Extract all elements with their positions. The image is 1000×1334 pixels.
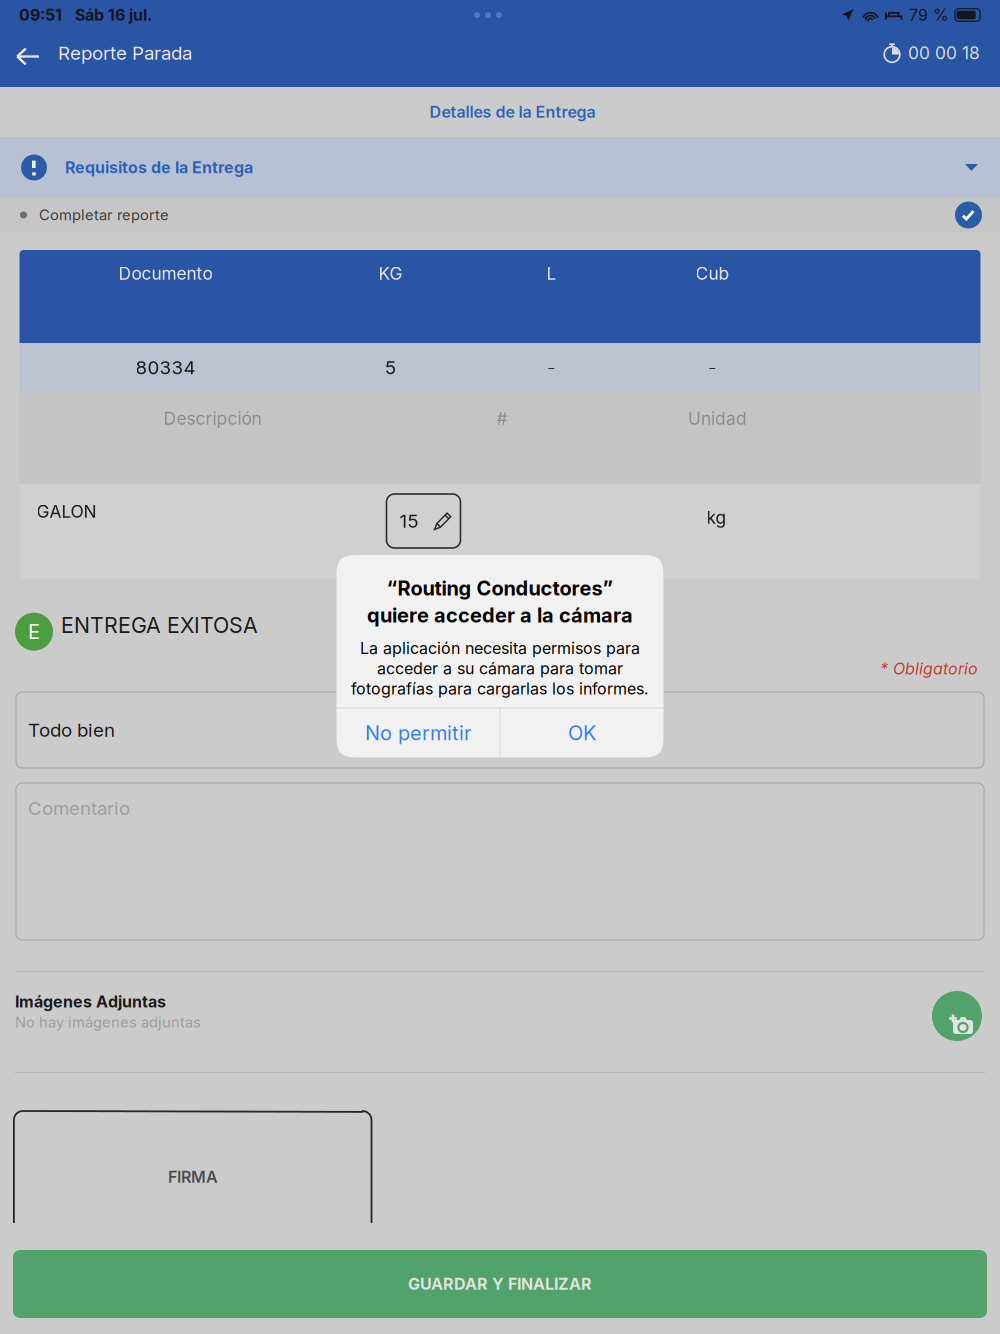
staticText: OK	[568, 721, 596, 745]
staticText: 79 %	[909, 5, 949, 25]
staticText: Sáb 16 jul.	[75, 5, 152, 25]
staticText: acceder a su cámara para tomar	[377, 659, 623, 678]
staticText: Unidad	[688, 408, 747, 429]
button[interactable]: GUARDAR Y FINALIZAR	[13, 1250, 987, 1318]
button[interactable]: Editar cantidad	[386, 494, 460, 548]
staticText: 09:51	[19, 5, 62, 25]
staticText: Reporte Parada	[58, 42, 192, 64]
staticText: kg	[706, 507, 726, 528]
staticText: 80334	[135, 356, 195, 379]
staticText: Descripción	[163, 408, 261, 429]
staticText: Documento	[118, 263, 212, 284]
button[interactable]: Cronómetro	[883, 30, 1000, 76]
staticText: quiere acceder a la cámara	[367, 603, 633, 627]
staticText: fotografías para cargarlas los informes.	[351, 679, 649, 698]
staticText: No hay imágenes adjuntas	[15, 1013, 201, 1031]
staticText: ENTREGA EXITOSA	[61, 612, 258, 638]
staticText: GUARDAR Y FINALIZAR	[408, 1274, 592, 1294]
staticText: -	[708, 356, 717, 379]
staticText: * Obligatorio	[880, 659, 978, 678]
button[interactable]: Agregar imagen	[932, 991, 982, 1041]
staticText: No permitir	[365, 721, 471, 745]
button[interactable]: Detalles de la Entrega	[0, 87, 1000, 137]
staticText: #	[496, 408, 507, 429]
staticText: 15	[399, 510, 418, 532]
staticText: La aplicación necesita permisos para	[360, 638, 640, 658]
staticText: “Routing Conductores”	[386, 576, 613, 600]
staticText: Completar reporte	[39, 206, 169, 224]
staticText: GALON	[36, 501, 96, 522]
staticText: FIRMA	[168, 1167, 218, 1187]
staticText: Cub	[695, 263, 729, 284]
staticText: L	[546, 263, 556, 284]
staticText: KG	[378, 263, 402, 284]
staticText: Comentario	[28, 797, 130, 820]
button[interactable]: No permitir	[336, 708, 499, 757]
staticText: Requisitos de la Entrega	[65, 158, 253, 177]
staticText: Imágenes Adjuntas	[15, 992, 166, 1011]
button[interactable]: OK	[500, 708, 663, 757]
staticText: 5	[385, 356, 396, 379]
staticText: -	[547, 356, 556, 379]
staticText: E	[28, 620, 40, 644]
staticText: 00 00 18	[908, 42, 980, 63]
button[interactable]: Atrás	[0, 30, 58, 76]
staticText: Todo bien	[28, 719, 115, 741]
button[interactable]: Requisitos de la Entrega	[0, 137, 1000, 198]
staticText: Detalles de la Entrega	[429, 102, 595, 122]
